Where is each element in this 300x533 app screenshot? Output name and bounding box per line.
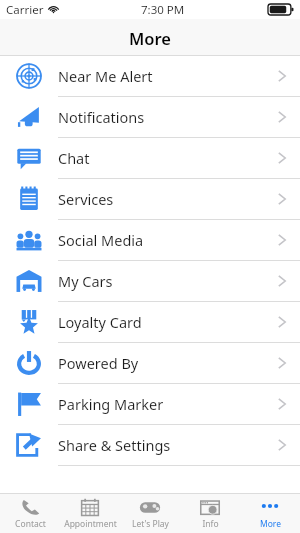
button[interactable]: Let's Play (120, 494, 180, 533)
button[interactable]: Loyalty Card (0, 302, 300, 343)
staticText: Carrier (6, 2, 44, 18)
button[interactable]: Social Media (0, 220, 300, 261)
button[interactable]: Contact (0, 494, 60, 533)
staticText: Parking Marker (58, 394, 164, 414)
staticText: Notifications (58, 107, 145, 127)
button[interactable]: Parking Marker (0, 384, 300, 425)
button[interactable]: Chat (0, 138, 300, 179)
button[interactable]: Near Me Alert (0, 56, 300, 97)
staticText: More (129, 27, 171, 49)
staticText: Contact (15, 518, 46, 530)
button[interactable]: More (240, 494, 300, 533)
staticText: 7:30 PM (141, 2, 185, 18)
button[interactable]: Appointment (60, 494, 120, 533)
staticText: Services (58, 189, 114, 209)
staticText: Share & Settings (58, 435, 171, 455)
staticText: Appointment (64, 518, 117, 530)
button[interactable]: Services (0, 179, 300, 220)
staticText: Powered By (58, 353, 139, 373)
staticText: More (260, 518, 281, 530)
button[interactable]: Powered By (0, 343, 300, 384)
button[interactable]: Info (180, 494, 240, 533)
staticText: Social Media (58, 230, 144, 250)
staticText: Info (202, 518, 219, 530)
button[interactable]: My Cars (0, 261, 300, 302)
staticText: Chat (58, 148, 90, 168)
staticText: Near Me Alert (58, 66, 153, 86)
button[interactable]: Notifications (0, 97, 300, 138)
staticText: Let's Play (132, 518, 169, 530)
button[interactable]: Share & Settings (0, 425, 300, 466)
staticText: My Cars (58, 271, 113, 291)
staticText: Loyalty Card (58, 312, 142, 332)
